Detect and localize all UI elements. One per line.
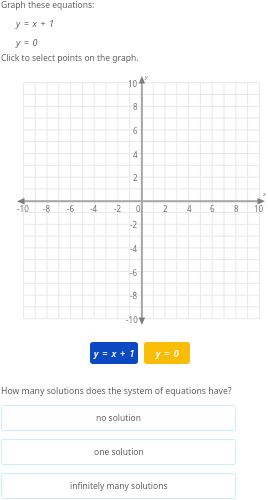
- staticText: -10: [126, 314, 138, 325]
- staticText: -6: [67, 203, 75, 214]
- staticText: y: [145, 73, 148, 81]
- staticText: infinitely many solutions: [70, 480, 168, 492]
- staticText: 0: [136, 203, 141, 214]
- staticText: How many solutions does the system of eq…: [1, 385, 232, 397]
- button[interactable]: no solution: [1, 405, 236, 431]
- staticText: 4: [133, 149, 138, 160]
- staticText: 2: [133, 172, 138, 183]
- staticText: -10: [17, 203, 29, 214]
- staticText: 10: [254, 203, 264, 214]
- staticText: x: [263, 190, 266, 198]
- staticText: -2: [114, 203, 122, 214]
- staticText: 2: [163, 203, 168, 214]
- staticText: no solution: [96, 412, 141, 424]
- staticText: -4: [130, 243, 138, 254]
- staticText: y = x + 1: [16, 17, 55, 29]
- staticText: -4: [90, 203, 98, 214]
- staticText: 10: [128, 78, 138, 89]
- staticText: y = x + 1: [94, 347, 136, 359]
- button[interactable]: y = 0: [144, 342, 190, 364]
- button[interactable]: one solution: [1, 439, 236, 465]
- staticText: -8: [43, 203, 51, 214]
- staticText: 6: [133, 125, 138, 136]
- staticText: 8: [234, 203, 239, 214]
- staticText: 6: [210, 203, 215, 214]
- staticText: y = 0: [156, 347, 180, 359]
- staticText: -8: [130, 290, 138, 301]
- button[interactable]: infinitely many solutions: [1, 473, 236, 499]
- staticText: Click to select points on the graph.: [1, 52, 139, 64]
- button[interactable]: y = x + 1: [90, 342, 138, 364]
- staticText: 4: [187, 203, 192, 214]
- staticText: -6: [130, 267, 138, 278]
- staticText: Graph these equations:: [1, 0, 95, 11]
- staticText: -2: [130, 219, 138, 230]
- staticText: 8: [133, 101, 138, 112]
- staticText: y = 0: [16, 36, 38, 48]
- staticText: one solution: [94, 446, 144, 458]
